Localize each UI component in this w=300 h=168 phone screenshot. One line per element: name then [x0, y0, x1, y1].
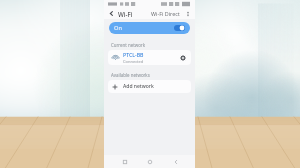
button[interactable]: More options — [184, 10, 192, 18]
staticText: Wi-Fi Direct — [151, 10, 180, 17]
button[interactable]: Recents — [119, 156, 130, 167]
staticText: PTCL-BB — [123, 51, 144, 58]
button[interactable]: Add network — [108, 80, 191, 93]
button[interactable]: PTCL-BB — [108, 50, 191, 65]
staticText: Wi-Fi — [118, 10, 133, 18]
staticText: Available networks — [111, 72, 150, 78]
button[interactable]: On — [109, 22, 190, 34]
staticText: Current network — [111, 42, 145, 48]
staticText: On — [114, 24, 122, 32]
button[interactable]: Back — [107, 9, 116, 18]
button[interactable]: Home — [144, 156, 155, 167]
button[interactable]: Wi-Fi Direct — [150, 10, 181, 17]
staticText: Add network — [123, 83, 154, 90]
button[interactable]: Network settings — [178, 53, 187, 62]
button[interactable]: Back — [170, 156, 181, 167]
staticText: Connected — [123, 59, 144, 64]
